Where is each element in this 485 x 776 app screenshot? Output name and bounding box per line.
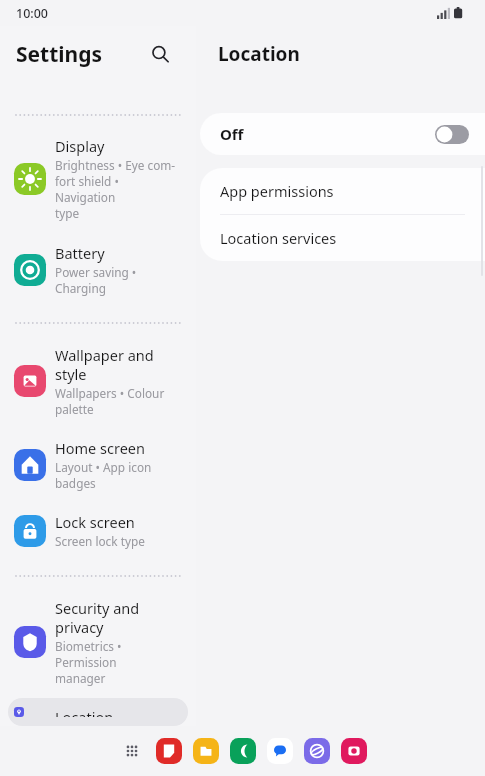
staticText: Screen lock type <box>55 533 145 549</box>
staticText: Settings <box>16 40 103 69</box>
button[interactable]: Battery <box>8 234 188 305</box>
button[interactable]: Lock screen <box>8 503 188 558</box>
staticText: Wallpapers • Colour palette <box>55 385 165 417</box>
button[interactable]: Messages <box>267 738 293 764</box>
button[interactable]: App permissions <box>200 168 485 214</box>
button[interactable]: Internet <box>304 738 330 764</box>
staticText: Off <box>220 124 244 144</box>
button[interactable]: Security and privacy <box>8 589 188 695</box>
button[interactable]: Location <box>8 698 188 726</box>
staticText: Layout • App icon badges <box>55 459 152 491</box>
button[interactable]: Off <box>200 113 485 155</box>
staticText: Brightness • Eye com- fort shield • Navi… <box>55 157 180 221</box>
button[interactable]: Home screen <box>8 429 188 500</box>
button[interactable]: My Files <box>193 738 219 764</box>
staticText: Home screen <box>55 438 145 458</box>
button[interactable]: Display <box>8 127 188 230</box>
button[interactable]: Wallpaper and style <box>8 336 188 426</box>
button[interactable]: Phone <box>230 738 256 764</box>
button[interactable]: Gallery <box>341 738 367 764</box>
staticText: Location <box>55 707 114 717</box>
button[interactable]: Location services <box>200 215 485 261</box>
button[interactable]: Search <box>146 40 174 68</box>
staticText: Location <box>218 41 300 67</box>
staticText: Biometrics • Permission manager <box>55 638 180 686</box>
staticText: Security and privacy <box>55 598 140 637</box>
staticText: Battery <box>55 243 105 263</box>
staticText: Power saving • Charging <box>55 264 137 296</box>
staticText: Display <box>55 136 105 156</box>
staticText: Location services <box>220 228 337 248</box>
staticText: Lock screen <box>55 512 135 532</box>
staticText: 10:00 <box>16 5 49 22</box>
button[interactable]: Apps <box>119 738 145 764</box>
staticText: Wallpaper and style <box>55 345 154 384</box>
staticText: App permissions <box>220 181 334 201</box>
button[interactable]: Notes <box>156 738 182 764</box>
